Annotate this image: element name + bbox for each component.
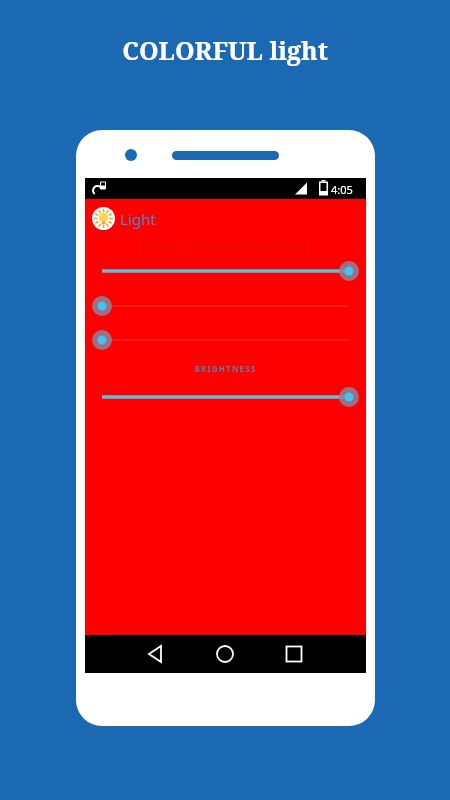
button[interactable]: Light app icon	[89, 203, 179, 233]
button[interactable]: Slider	[95, 294, 356, 318]
staticText: BRIGHTNESS	[85, 363, 366, 374]
button[interactable]: Slider	[95, 259, 356, 283]
button[interactable]: Home	[206, 635, 244, 673]
staticText: 4:05	[331, 182, 353, 197]
other: Light app icon	[92, 207, 115, 230]
staticText: COLORFUL light	[0, 33, 450, 67]
button[interactable]: Back	[137, 635, 175, 673]
staticText: Light	[120, 209, 156, 229]
staticText: Red:255, Green:0, Blue:0 #FF0000	[85, 238, 366, 253]
button[interactable]: Slider	[95, 385, 356, 409]
button[interactable]: Recent apps	[275, 635, 313, 673]
button[interactable]: Slider	[95, 328, 356, 352]
